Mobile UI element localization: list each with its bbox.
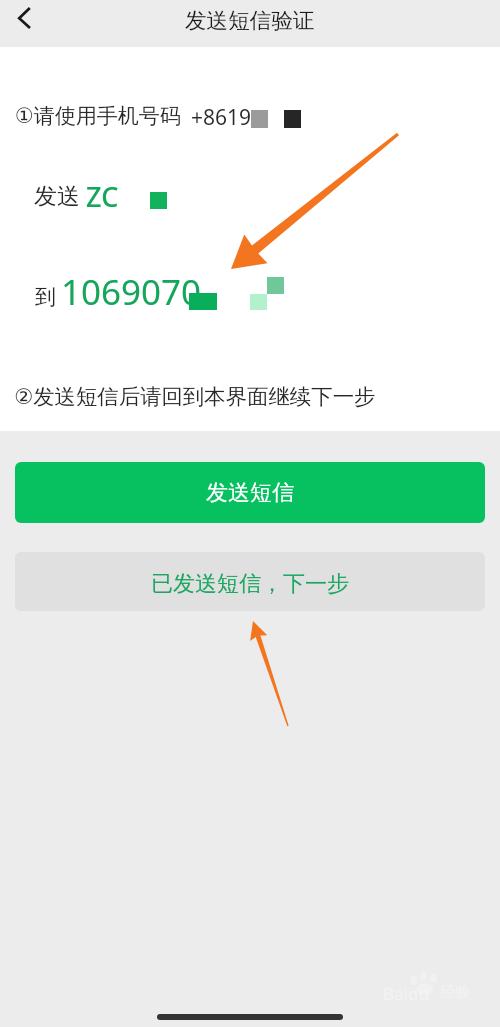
staticText: 发送	[34, 182, 80, 211]
staticText: ②发送短信后请回到本界面继续下一步	[14, 383, 376, 410]
button[interactable]: Back	[0, 0, 48, 47]
staticText: 已发送短信，下一步	[151, 570, 349, 598]
staticText: 1069070	[61, 268, 202, 316]
staticText: +8619	[191, 103, 252, 132]
staticText: 发送短信验证	[185, 7, 315, 34]
staticText: 发送短信	[206, 479, 294, 507]
button[interactable]: 已发送短信，下一步	[15, 552, 485, 611]
staticText: ZC	[86, 178, 119, 215]
button[interactable]: 发送短信	[15, 462, 485, 523]
staticText: ①请使用手机号码	[15, 103, 181, 129]
staticText: 到	[35, 284, 56, 310]
